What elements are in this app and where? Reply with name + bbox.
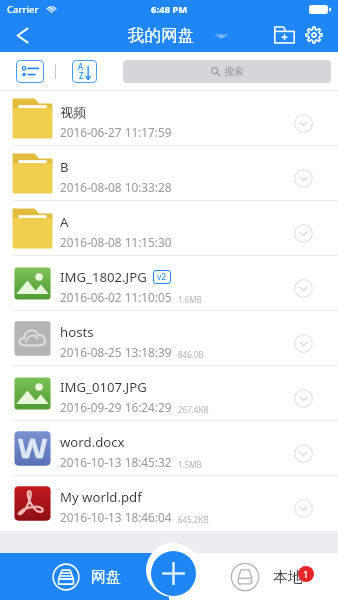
button[interactable]: More options — [286, 271, 320, 305]
button[interactable]: B — [0, 146, 338, 201]
button[interactable]: IMG_1802.JPG — [0, 256, 338, 311]
button[interactable]: More options — [286, 161, 320, 195]
staticText: 2016-06-27 11:17:59 — [60, 124, 172, 140]
staticText: 视频 — [60, 104, 87, 121]
button[interactable]: Back — [0, 18, 45, 52]
staticText: v2 — [157, 271, 167, 283]
staticText: My world.pdf — [60, 488, 142, 506]
staticText: 2016-06-02 11:10:05 — [60, 289, 172, 305]
staticText: 645.2KB — [178, 514, 209, 525]
staticText: 2016-08-08 10:33:28 — [60, 179, 172, 195]
button[interactable]: More options — [286, 381, 320, 415]
staticText: IMG_0107.JPG — [60, 378, 147, 396]
staticText: 6:48 PM — [151, 3, 188, 16]
button[interactable]: 网盘 — [0, 553, 169, 600]
staticText: 2016-09-29 16:24:29 — [60, 399, 172, 415]
button[interactable]: 视频 — [0, 91, 338, 146]
staticText: 2016-10-13 18:46:04 — [60, 509, 172, 525]
staticText: 网盘 — [91, 568, 121, 587]
button[interactable]: More options — [286, 436, 320, 470]
staticText: Carrier — [7, 3, 39, 16]
button[interactable]: More options — [286, 326, 320, 360]
button[interactable]: View mode — [16, 60, 44, 83]
button[interactable]: word.docx — [0, 421, 338, 476]
staticText: 1 — [303, 568, 309, 581]
staticText: 1.6MB — [178, 294, 202, 305]
staticText: 2016-10-13 18:45:32 — [60, 454, 172, 470]
staticText: 我的网盘 — [128, 25, 194, 46]
staticText: word.docx — [60, 433, 125, 451]
button[interactable]: New folder — [269, 18, 299, 52]
staticText: 搜索 — [224, 65, 244, 78]
staticText: Z — [79, 70, 84, 81]
staticText: B — [60, 158, 69, 176]
button[interactable]: hosts — [0, 311, 338, 366]
staticText: A — [78, 61, 84, 72]
staticText: 267.4KB — [178, 404, 209, 415]
button[interactable]: Add — [151, 551, 196, 596]
button[interactable]: IMG_0107.JPG — [0, 366, 338, 421]
staticText: 2016-08-08 11:15:30 — [60, 234, 172, 250]
staticText: 2016-08-25 13:18:39 — [60, 344, 172, 360]
staticText: hosts — [60, 323, 94, 341]
button[interactable]: 搜索 — [123, 60, 331, 83]
button[interactable]: My world.pdf — [0, 476, 338, 531]
button[interactable]: 本地 — [169, 553, 338, 600]
button[interactable]: More options — [286, 106, 320, 140]
staticText: IMG_1802.JPG — [60, 268, 147, 286]
button[interactable]: Sort — [72, 60, 97, 83]
staticText: 846.0B — [178, 349, 204, 360]
staticText: A — [60, 213, 69, 231]
button[interactable]: More options — [286, 491, 320, 525]
button[interactable]: A — [0, 201, 338, 256]
button[interactable]: More options — [286, 216, 320, 250]
staticText: 1.5MB — [178, 459, 202, 470]
button[interactable]: 我的网盘 — [128, 25, 229, 46]
staticText: 本地 — [273, 568, 303, 587]
button[interactable]: Settings — [299, 18, 329, 52]
